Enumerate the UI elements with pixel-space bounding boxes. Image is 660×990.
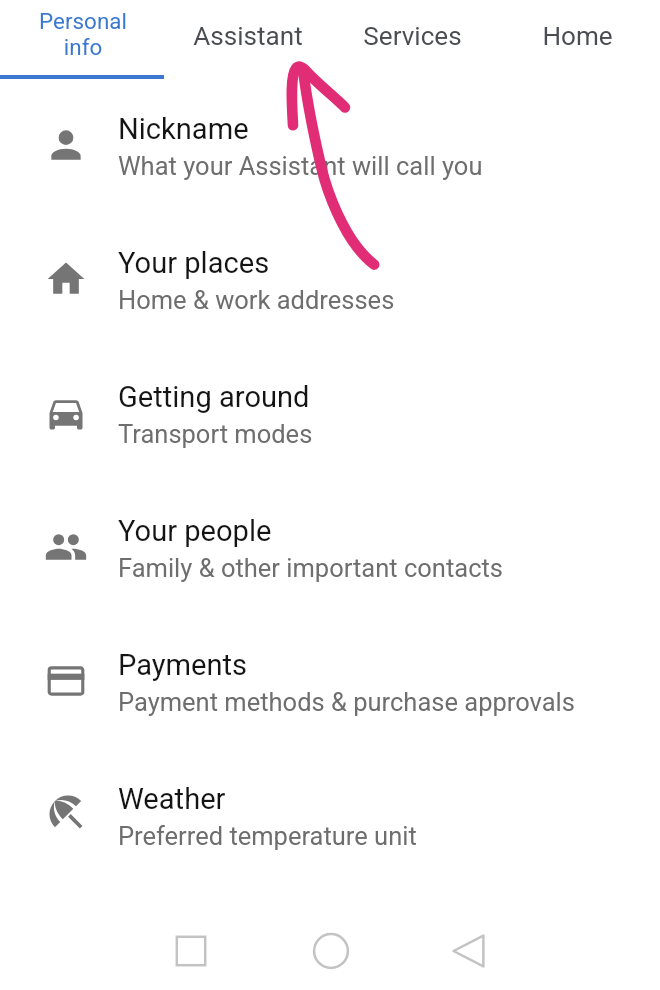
staticText: Nickname xyxy=(118,112,249,146)
staticText: Weather xyxy=(118,782,226,816)
button[interactable]: Payments xyxy=(0,615,660,749)
staticText: Your places xyxy=(118,246,270,280)
staticText: Personal info xyxy=(39,8,127,60)
staticText: Transport modes xyxy=(118,419,313,449)
staticText: Home xyxy=(542,21,613,52)
staticText: Payments xyxy=(118,648,248,682)
staticText: Preferred temperature unit xyxy=(118,821,417,851)
staticText: Assistant xyxy=(193,21,303,52)
button[interactable]: Getting around xyxy=(0,347,660,481)
button[interactable]: Home xyxy=(495,0,660,79)
staticText: Home & work addresses xyxy=(118,285,395,315)
button[interactable]: Your places xyxy=(0,213,660,347)
button[interactable]: Back xyxy=(422,906,514,990)
button[interactable]: Home xyxy=(285,906,377,990)
button[interactable]: Your people xyxy=(0,481,660,615)
button[interactable]: Services xyxy=(330,0,495,79)
button[interactable]: Recent apps xyxy=(145,906,237,990)
button[interactable]: Assistant xyxy=(165,0,330,79)
button[interactable]: Nickname xyxy=(0,79,660,213)
staticText: Getting around xyxy=(118,380,310,414)
button[interactable]: Personal info xyxy=(0,0,165,79)
staticText: Payment methods & purchase approvals xyxy=(118,687,575,717)
staticText: Family & other important contacts xyxy=(118,553,503,583)
staticText: Services xyxy=(363,21,462,52)
staticText: What your Assistant will call you xyxy=(118,151,483,181)
staticText: Your people xyxy=(118,514,272,548)
button[interactable]: Weather xyxy=(0,749,660,883)
